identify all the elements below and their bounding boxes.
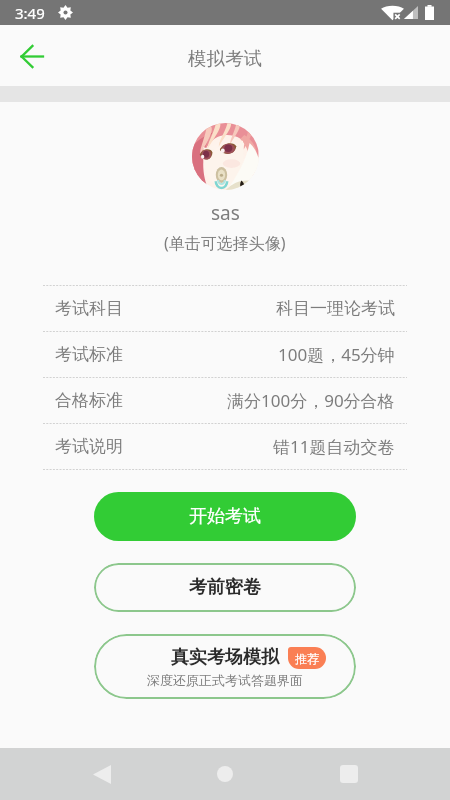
staticText: 开始考试: [189, 505, 261, 528]
staticText: 科目一理论考试: [276, 298, 395, 319]
button[interactable]: 考试标准: [43, 332, 407, 377]
button[interactable]: 合格标准: [43, 378, 407, 423]
button[interactable]: 考前密卷: [94, 563, 356, 612]
staticText: 推荐: [295, 651, 319, 666]
staticText: 模拟考试: [188, 47, 262, 70]
staticText: 3:49: [15, 3, 45, 23]
staticText: 深度还原正式考试答题界面: [147, 672, 303, 688]
button[interactable]: Back: [80, 752, 124, 796]
staticText: 真实考场模拟: [171, 646, 279, 669]
button[interactable]: 考试科目: [43, 286, 407, 331]
staticText: 错11题自动交卷: [273, 435, 395, 458]
staticText: 考前密卷: [189, 576, 261, 599]
staticText: 满分100分，90分合格: [227, 389, 395, 412]
staticText: 考试说明: [55, 436, 123, 457]
button[interactable]: Home: [203, 752, 247, 796]
staticText: 考试标准: [55, 344, 123, 365]
staticText: 100题，45分钟: [278, 343, 395, 366]
button[interactable]: 真实考场模拟: [94, 634, 356, 699]
staticText: 考试科目: [55, 298, 123, 319]
button[interactable]: Recents: [327, 752, 371, 796]
button[interactable]: 开始考试: [94, 492, 356, 541]
button[interactable]: Back: [11, 35, 53, 77]
button[interactable]: 考试说明: [43, 424, 407, 469]
button[interactable]: Change avatar: [192, 123, 259, 190]
staticText: 合格标准: [55, 390, 123, 411]
staticText: (单击可选择头像): [164, 232, 286, 254]
staticText: sas: [211, 200, 240, 226]
